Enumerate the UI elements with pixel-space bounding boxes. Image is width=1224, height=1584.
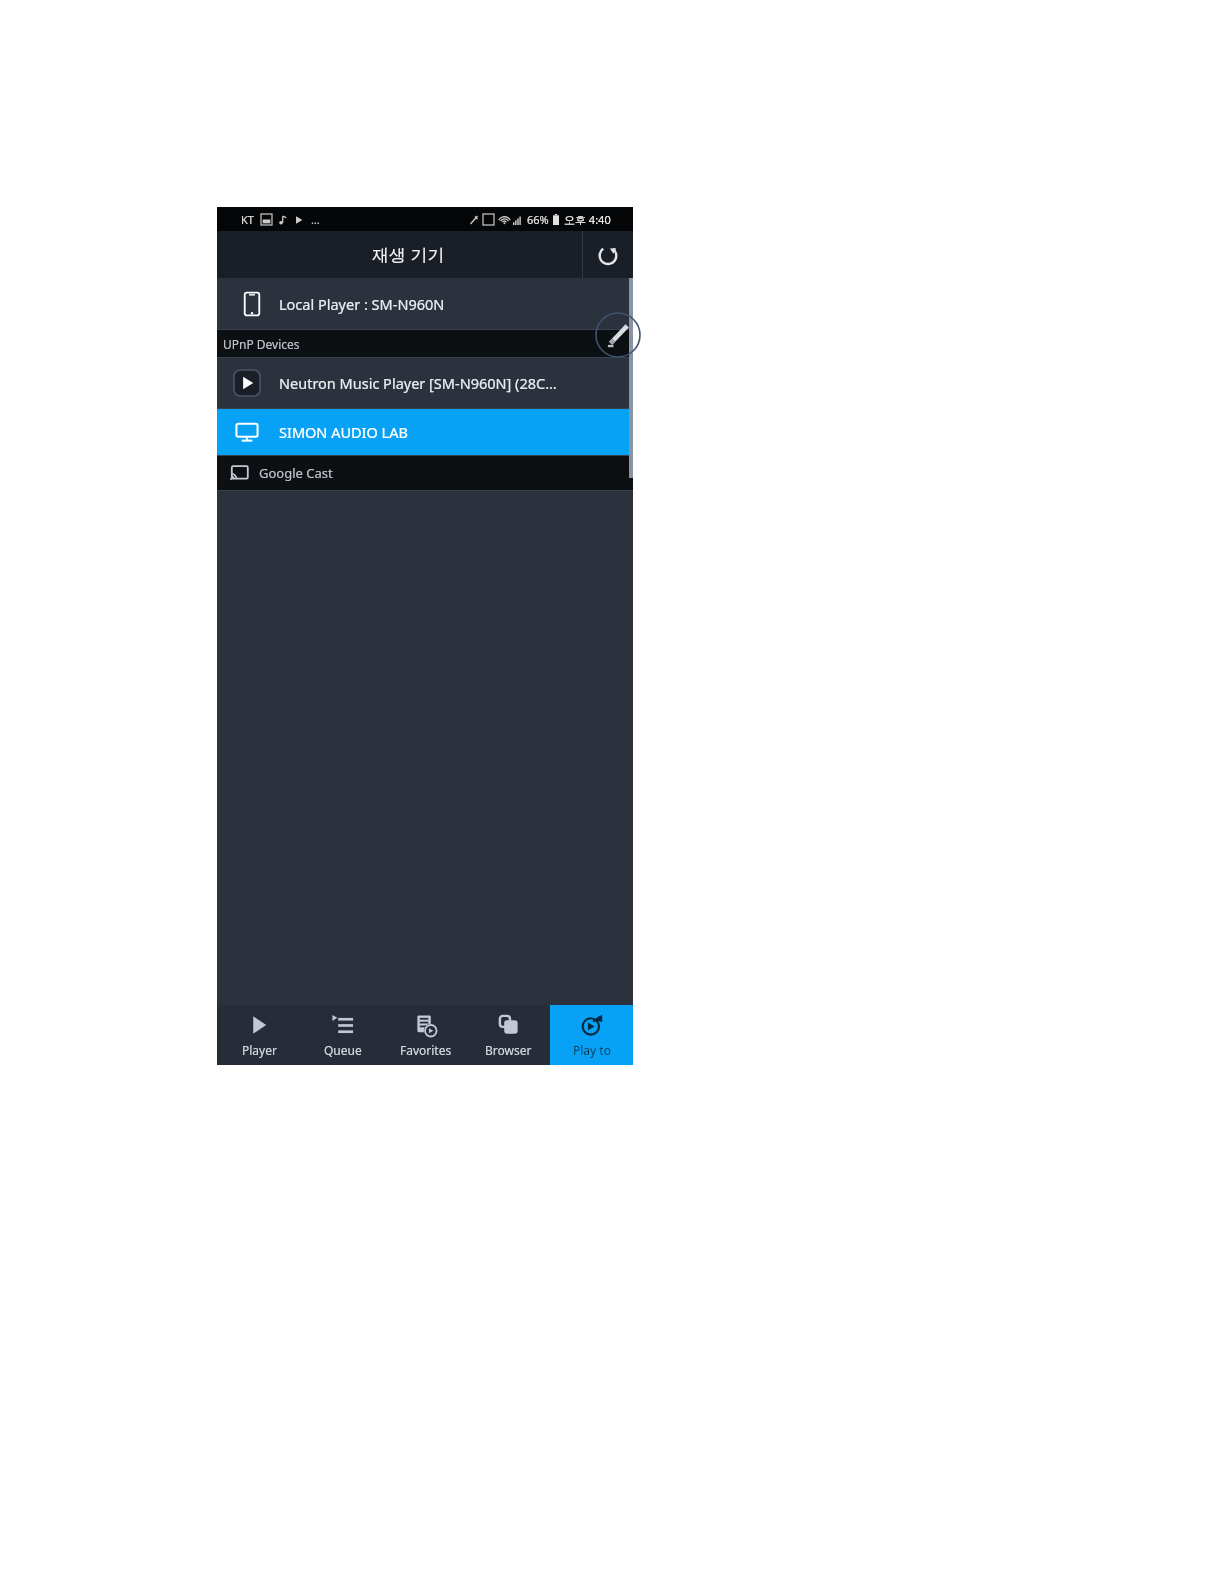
staticText: … bbox=[311, 212, 320, 227]
button[interactable]: Refresh bbox=[583, 231, 633, 278]
staticText: Browser bbox=[485, 1042, 532, 1058]
button[interactable]: Google Cast bbox=[217, 456, 633, 490]
staticText: Neutron Music Player [SM-N960N] (28C… bbox=[279, 373, 557, 393]
staticText: KT bbox=[241, 212, 254, 227]
button[interactable]: Browser bbox=[467, 1005, 550, 1065]
staticText: Player bbox=[242, 1042, 277, 1058]
button[interactable]: Edit bbox=[595, 312, 641, 358]
staticText: 재생 기기 bbox=[372, 243, 445, 266]
staticText: Play to bbox=[573, 1042, 611, 1058]
button[interactable]: UPnP Devices bbox=[217, 330, 633, 357]
button[interactable]: Local Player : SM-N960N bbox=[217, 278, 633, 329]
staticText: SIMON AUDIO LAB bbox=[279, 422, 408, 442]
button[interactable]: SIMON AUDIO LAB bbox=[217, 409, 633, 455]
staticText: UPnP Devices bbox=[223, 336, 300, 352]
staticText: Queue bbox=[324, 1042, 362, 1058]
button[interactable]: Queue bbox=[301, 1005, 384, 1065]
button[interactable]: Play to bbox=[550, 1005, 633, 1065]
button[interactable]: Favorites bbox=[384, 1005, 467, 1065]
staticText: 66% bbox=[527, 212, 549, 227]
staticText: 오후 4:40 bbox=[564, 212, 611, 227]
staticText: Google Cast bbox=[259, 464, 333, 482]
staticText: Local Player : SM-N960N bbox=[279, 294, 445, 314]
staticText: Favorites bbox=[400, 1042, 452, 1058]
button[interactable]: Neutron Music Player [SM-N960N] (28C… bbox=[217, 358, 633, 408]
button[interactable]: Player bbox=[217, 1005, 301, 1065]
